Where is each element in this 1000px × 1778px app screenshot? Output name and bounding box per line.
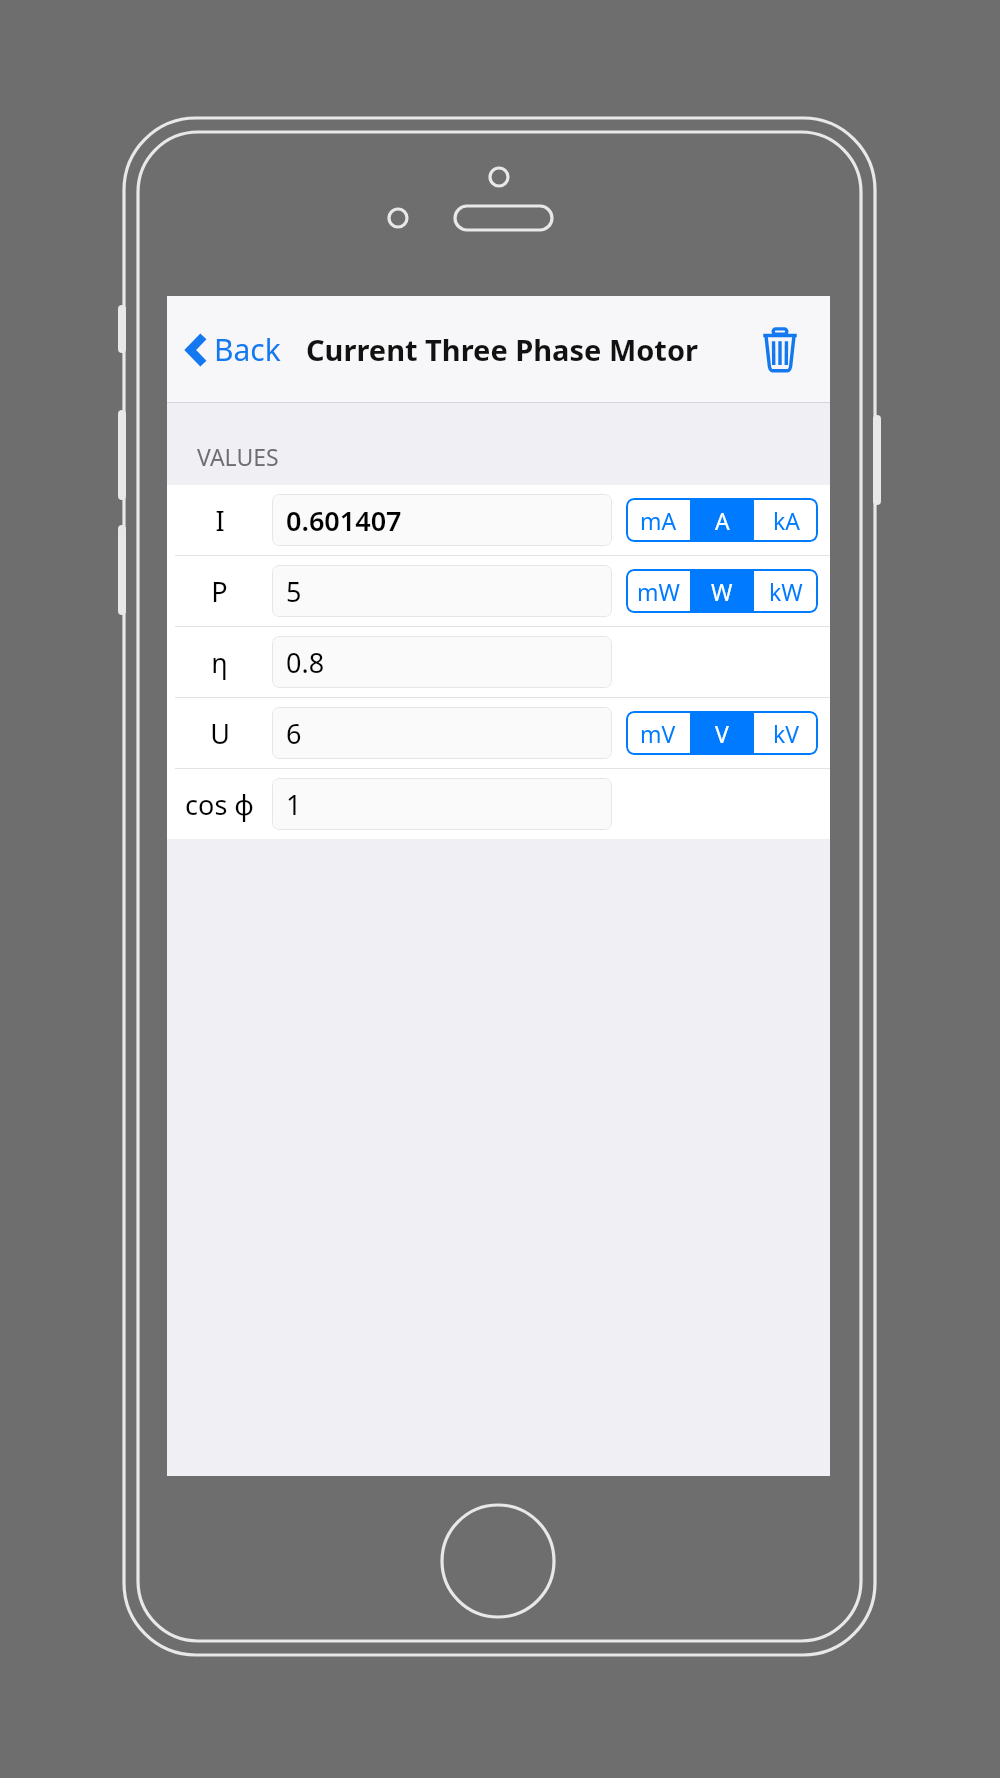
button[interactable]: mV bbox=[626, 711, 690, 755]
staticText: 5 bbox=[286, 573, 302, 610]
button[interactable]: mA bbox=[626, 498, 690, 542]
staticText: 0.8 bbox=[286, 644, 325, 681]
staticText: kW bbox=[769, 576, 803, 607]
staticText: V bbox=[715, 718, 729, 749]
staticText: 0.601407 bbox=[286, 502, 402, 539]
staticText: mV bbox=[640, 718, 676, 749]
staticText: U bbox=[210, 715, 230, 752]
button[interactable]: Back bbox=[181, 321, 287, 378]
staticText: kA bbox=[773, 505, 800, 536]
button[interactable]: Delete bbox=[754, 324, 806, 376]
staticText: W bbox=[711, 576, 733, 607]
button[interactable]: W bbox=[690, 569, 754, 613]
button[interactable]: 0.8 bbox=[272, 636, 612, 688]
staticText: Current Three Phase Motor bbox=[306, 330, 699, 369]
staticText: A bbox=[715, 505, 730, 536]
staticText: kV bbox=[773, 718, 800, 749]
staticText: η bbox=[211, 644, 228, 681]
button[interactable]: V bbox=[690, 711, 754, 755]
staticText: 1 bbox=[286, 786, 302, 823]
button[interactable]: A bbox=[690, 498, 754, 542]
button[interactable]: 6 bbox=[272, 707, 612, 759]
staticText: VALUES bbox=[197, 441, 279, 472]
button[interactable]: 0.601407 bbox=[272, 494, 612, 546]
button[interactable]: kV bbox=[754, 711, 818, 755]
staticText: I bbox=[215, 502, 225, 539]
staticText: Back bbox=[214, 329, 281, 370]
staticText: mW bbox=[637, 576, 680, 607]
button[interactable]: 5 bbox=[272, 565, 612, 617]
button[interactable]: 1 bbox=[272, 778, 612, 830]
button[interactable]: mW bbox=[626, 569, 690, 613]
staticText: cos φ bbox=[185, 786, 254, 823]
staticText: P bbox=[211, 573, 228, 610]
button[interactable]: kW bbox=[754, 569, 818, 613]
button[interactable]: kA bbox=[754, 498, 818, 542]
staticText: mA bbox=[640, 505, 677, 536]
staticText: 6 bbox=[286, 715, 302, 752]
